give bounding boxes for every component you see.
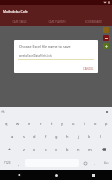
staticText: t bbox=[51, 121, 53, 126]
button[interactable]: Add bbox=[103, 43, 109, 49]
button[interactable]: m bbox=[84, 143, 95, 156]
button[interactable]: r bbox=[35, 117, 46, 130]
button[interactable]: s bbox=[18, 130, 29, 143]
staticText: ?123 bbox=[4, 161, 11, 165]
staticText: CAFE PLAYERS bbox=[48, 20, 66, 24]
button[interactable]: l bbox=[95, 130, 106, 143]
button[interactable]: f bbox=[40, 130, 51, 143]
button[interactable]: Emoji bbox=[80, 156, 90, 170]
staticText: l bbox=[100, 134, 102, 139]
button[interactable]: n bbox=[73, 143, 84, 156]
button[interactable]: k bbox=[84, 130, 95, 143]
staticText: b bbox=[66, 147, 69, 152]
button[interactable]: Recent apps bbox=[75, 170, 112, 180]
button[interactable]: v bbox=[51, 143, 62, 156]
staticText: r bbox=[40, 121, 42, 126]
staticText: v bbox=[55, 147, 58, 152]
staticText: . bbox=[94, 161, 96, 166]
staticText: #+= bbox=[104, 161, 109, 165]
button[interactable]: t bbox=[46, 117, 57, 130]
button[interactable]: q bbox=[0, 117, 12, 130]
button[interactable]: h bbox=[62, 130, 73, 143]
button[interactable]: w bbox=[12, 117, 24, 130]
button[interactable]: o bbox=[90, 117, 101, 130]
staticText: g bbox=[55, 134, 58, 139]
button[interactable]: g bbox=[51, 130, 62, 143]
button[interactable]: i bbox=[79, 117, 90, 130]
button[interactable]: c bbox=[40, 143, 51, 156]
button[interactable]: SCOREBOARD bbox=[75, 18, 112, 26]
button[interactable]: Shift bbox=[0, 143, 18, 156]
button[interactable]: Notes bbox=[103, 27, 109, 33]
staticText: Mathdoku Cafe bbox=[3, 9, 28, 14]
staticText: x bbox=[33, 147, 36, 152]
staticText: j bbox=[78, 134, 80, 139]
staticText: p bbox=[105, 121, 108, 126]
staticText: Choose Excel file name to save bbox=[19, 44, 71, 49]
staticText: w bbox=[16, 121, 20, 126]
staticText: CAFE TABLE bbox=[12, 20, 27, 24]
staticText: h bbox=[66, 134, 69, 139]
staticText: s bbox=[23, 134, 25, 139]
button[interactable]: j bbox=[73, 130, 84, 143]
button[interactable]: CANCEL bbox=[79, 64, 98, 73]
button[interactable]: Back bbox=[0, 170, 38, 180]
staticText: , bbox=[18, 161, 20, 166]
button[interactable]: #+= bbox=[100, 156, 112, 170]
staticText: d bbox=[33, 134, 36, 139]
staticText: m bbox=[88, 147, 92, 152]
staticText: SCOREBOARD bbox=[85, 20, 102, 24]
staticText: a bbox=[11, 134, 14, 139]
button[interactable]: z bbox=[18, 143, 29, 156]
staticText: q bbox=[5, 121, 8, 126]
button[interactable]: d bbox=[29, 130, 40, 143]
staticText: c bbox=[45, 147, 47, 152]
staticText: y bbox=[61, 121, 64, 126]
staticText: u bbox=[72, 121, 75, 126]
button[interactable]: e bbox=[24, 117, 35, 130]
staticText: CANCEL bbox=[83, 67, 94, 71]
button[interactable]: , bbox=[14, 156, 24, 170]
button[interactable]: Backspace bbox=[95, 143, 112, 156]
staticText: o bbox=[94, 121, 97, 126]
staticText: e bbox=[28, 121, 31, 126]
staticText: n bbox=[77, 147, 80, 152]
staticText: k bbox=[88, 134, 91, 139]
button[interactable]: Voice input bbox=[1, 110, 5, 114]
button[interactable]: CAFE PLAYERS bbox=[38, 18, 75, 26]
button[interactable]: u bbox=[68, 117, 79, 130]
button[interactable]: p bbox=[101, 117, 112, 130]
staticText: f bbox=[45, 134, 47, 139]
button[interactable]: Remove bbox=[103, 35, 109, 41]
button[interactable]: x bbox=[29, 143, 40, 156]
button[interactable]: CAFE TABLE bbox=[0, 18, 38, 26]
button[interactable]: a bbox=[7, 130, 18, 143]
button[interactable]: ?123 bbox=[0, 156, 14, 170]
staticText: weeksExcelDataFile(s).xls bbox=[19, 54, 52, 58]
staticText: i bbox=[84, 121, 86, 126]
button[interactable]: b bbox=[62, 143, 73, 156]
button[interactable]: y bbox=[57, 117, 68, 130]
staticText: z bbox=[23, 147, 25, 152]
button[interactable]: Home bbox=[38, 170, 75, 180]
